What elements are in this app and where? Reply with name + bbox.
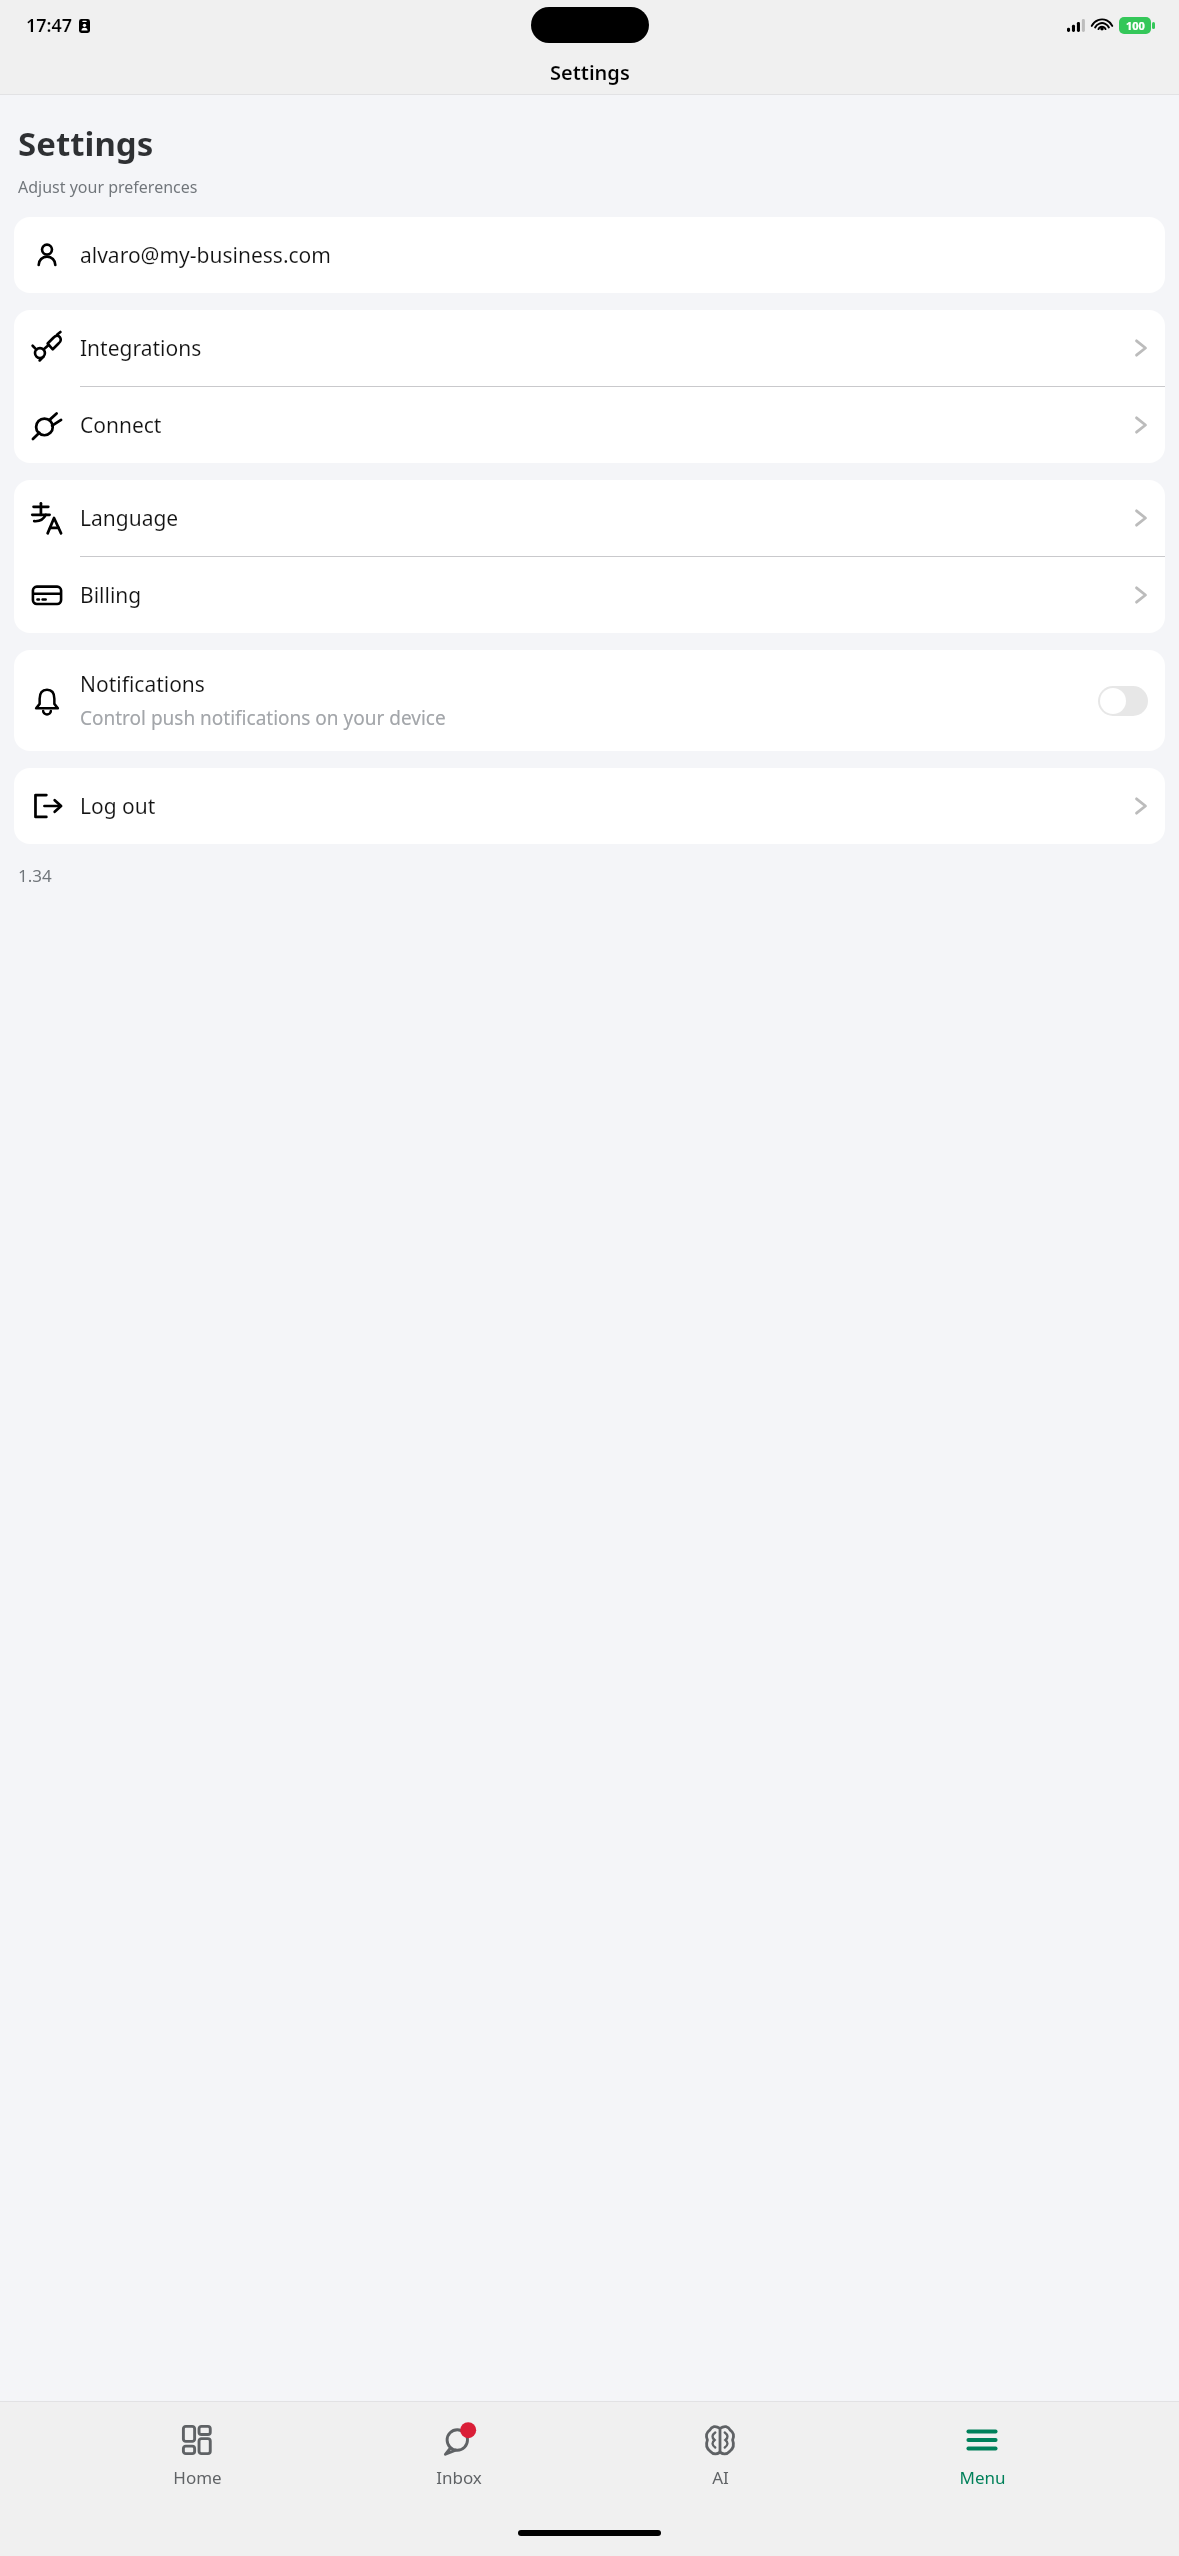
- staticText: Menu: [959, 2466, 1006, 2489]
- staticText: Billing: [80, 581, 1134, 610]
- staticText: Notifications: [80, 670, 205, 699]
- button[interactable]: Log out: [14, 768, 1165, 844]
- staticText: Settings: [550, 59, 630, 86]
- staticText: Home: [173, 2466, 222, 2489]
- staticText: Log out: [80, 792, 1134, 821]
- staticText: Integrations: [80, 334, 1134, 363]
- button[interactable]: Inbox: [394, 2417, 524, 2495]
- staticText: 1.34: [18, 864, 52, 887]
- button[interactable]: Billing: [14, 557, 1165, 633]
- button[interactable]: Language: [14, 480, 1165, 556]
- staticText: Connect: [80, 411, 1134, 440]
- staticText: Control push notifications on your devic…: [80, 705, 446, 731]
- button[interactable]: AI: [655, 2417, 785, 2495]
- staticText: Adjust your preferences: [18, 176, 198, 198]
- staticText: AI: [712, 2466, 729, 2489]
- button[interactable]: Menu: [917, 2417, 1047, 2495]
- staticText: Settings: [18, 121, 154, 166]
- button[interactable]: Toggle notifications: [1098, 686, 1148, 716]
- button[interactable]: Home: [132, 2417, 262, 2495]
- button[interactable]: Notifications: [14, 650, 1165, 751]
- button[interactable]: Connect: [14, 387, 1165, 463]
- staticText: alvaro@my-business.com: [80, 241, 1148, 270]
- staticText: 17:47: [26, 13, 73, 38]
- staticText: 100: [1126, 18, 1145, 33]
- button[interactable]: alvaro@my-business.com: [14, 217, 1165, 293]
- button[interactable]: Integrations: [14, 310, 1165, 386]
- staticText: Inbox: [436, 2466, 482, 2489]
- staticText: Language: [80, 504, 1134, 533]
